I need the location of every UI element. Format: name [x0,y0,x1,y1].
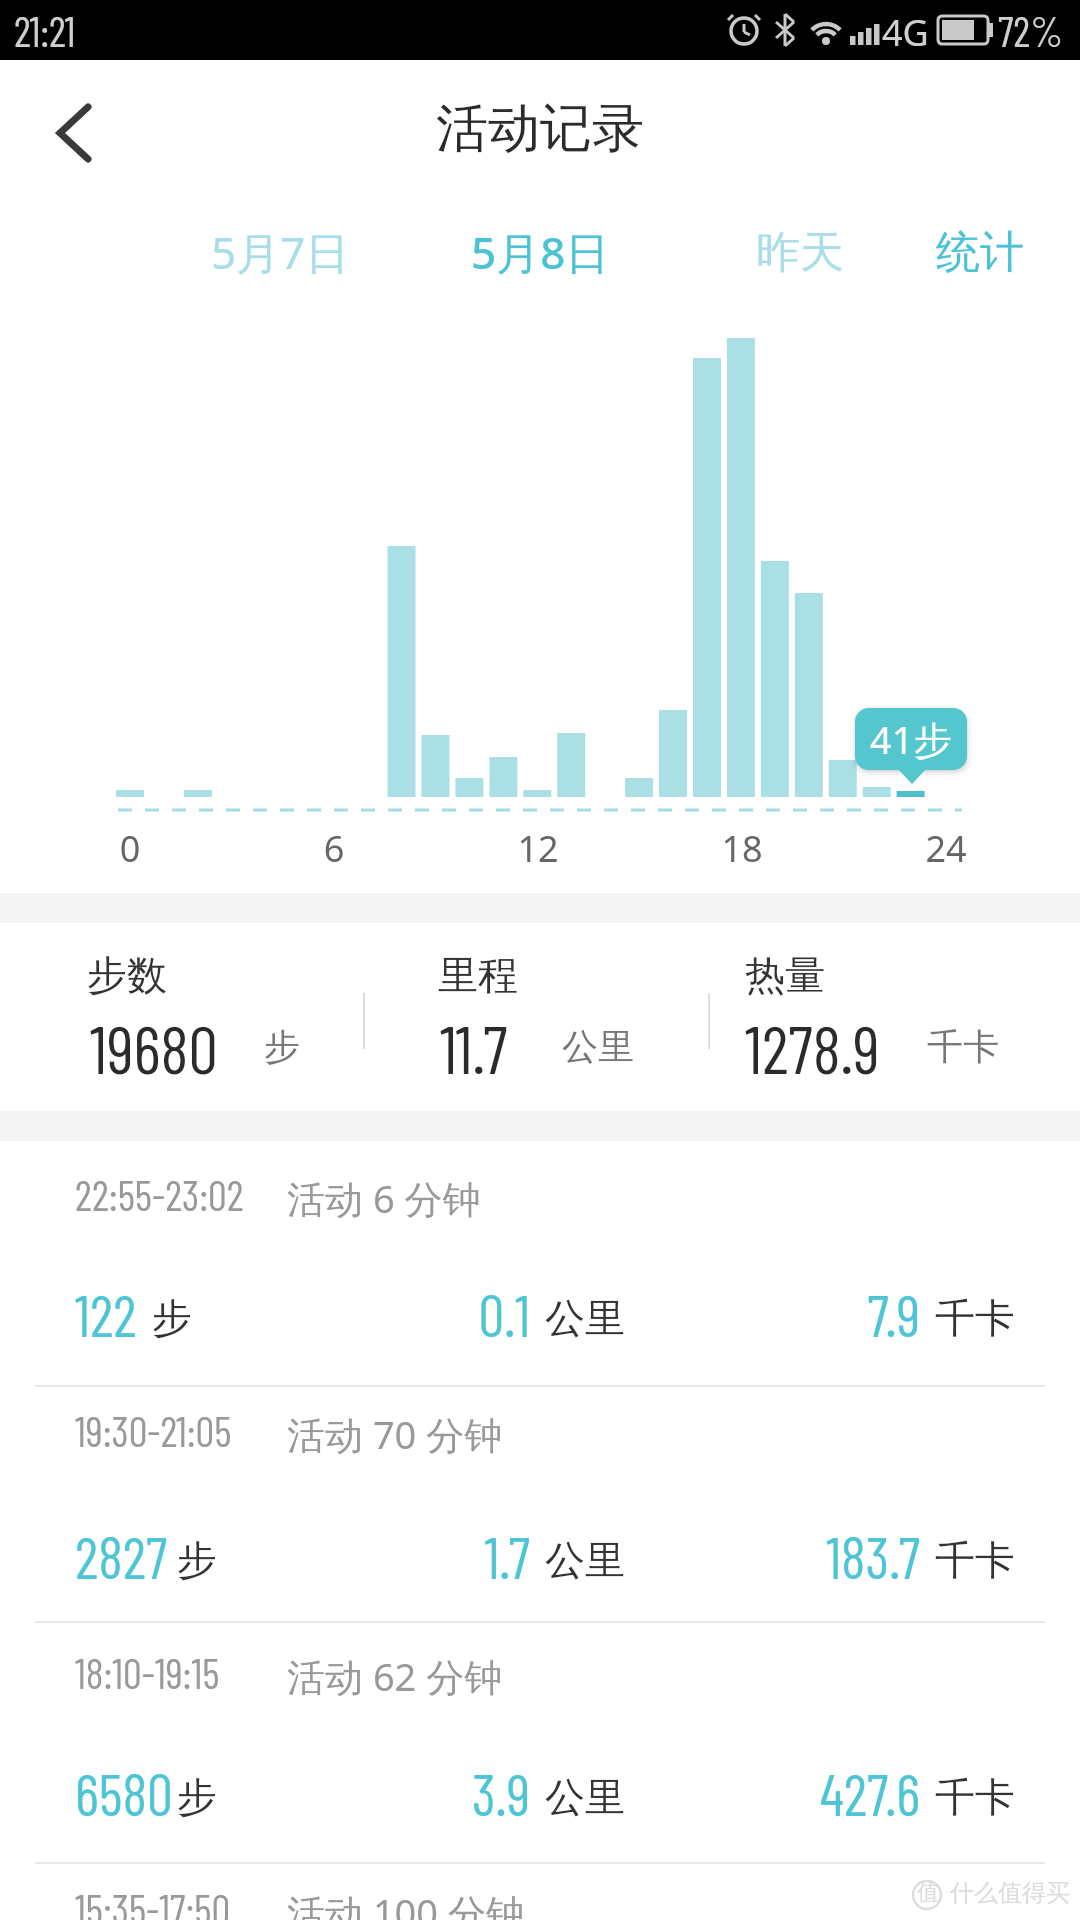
button[interactable] [0,1141,1080,1381]
staticText: 15:35-17:50 [75,1883,231,1920]
staticText: 22:55-23:02 [75,1169,244,1219]
staticText: 7.9 [620,1279,920,1349]
button[interactable]: 5月8日 [430,212,650,292]
staticText: 步 [177,1772,217,1822]
staticText: 什么值得买 [950,1878,1070,1908]
staticText: 活动 6 分钟 [287,1172,481,1224]
staticText: 427.6 [620,1758,920,1828]
staticText: 6 [294,824,374,873]
staticText: 公里 [545,1772,625,1822]
staticText: 里程 [438,950,518,1000]
staticText: 1.7 [230,1521,530,1591]
staticText: 公里 [562,1024,634,1069]
button[interactable] [0,60,120,190]
staticText: 统计 [936,225,1024,280]
staticText: 0 [90,824,170,873]
staticText: 0.1 [230,1279,530,1349]
staticText: 122 [75,1279,137,1349]
button[interactable]: 5月7日 [170,212,390,292]
staticText: 千卡 [927,1024,999,1069]
staticText: 千卡 [935,1535,1015,1585]
staticText: 18 [702,824,782,873]
staticText: 步 [264,1024,300,1069]
staticText: 2827 [75,1521,168,1591]
staticText: 步数 [87,950,167,1000]
staticText: 千卡 [935,1772,1015,1822]
button[interactable] [0,1621,1080,1861]
staticText: 24 [906,824,986,873]
staticText: 活动记录 [436,96,644,162]
staticText: 4G [882,8,929,57]
staticText: 18:10-19:15 [75,1647,220,1697]
staticText: 活动 62 分钟 [287,1650,503,1702]
button[interactable] [0,1385,1080,1625]
staticText: 1278.9 [745,1008,880,1087]
staticText: 公里 [545,1535,625,1585]
staticText: 41步 [870,713,952,765]
staticText: 72% [998,5,1064,55]
staticText: 活动 100 分钟 [287,1886,524,1920]
staticText: 5月7日 [211,222,350,282]
staticText: 步 [177,1535,217,1585]
staticText: 公里 [545,1293,625,1343]
staticText: 19680 [90,1008,218,1087]
staticText: 21:21 [14,5,76,55]
staticText: 5月8日 [471,222,610,282]
staticText: 千卡 [935,1293,1015,1343]
button[interactable]: 统计 [900,212,1060,292]
staticText: 3.9 [230,1758,530,1828]
staticText: 11.7 [440,1008,508,1087]
staticText: 6580 [75,1758,173,1828]
staticText: 183.7 [620,1521,920,1591]
staticText: 19:30-21:05 [75,1405,232,1455]
staticText: 12 [498,824,578,873]
staticText: 活动 70 分钟 [287,1408,503,1460]
button[interactable]: 昨天 [720,212,880,292]
staticText: 值 [917,1879,939,1907]
button[interactable]: 41步 [855,708,967,770]
staticText: 步 [152,1293,192,1343]
staticText: 昨天 [756,225,844,280]
staticText: 热量 [745,950,825,1000]
